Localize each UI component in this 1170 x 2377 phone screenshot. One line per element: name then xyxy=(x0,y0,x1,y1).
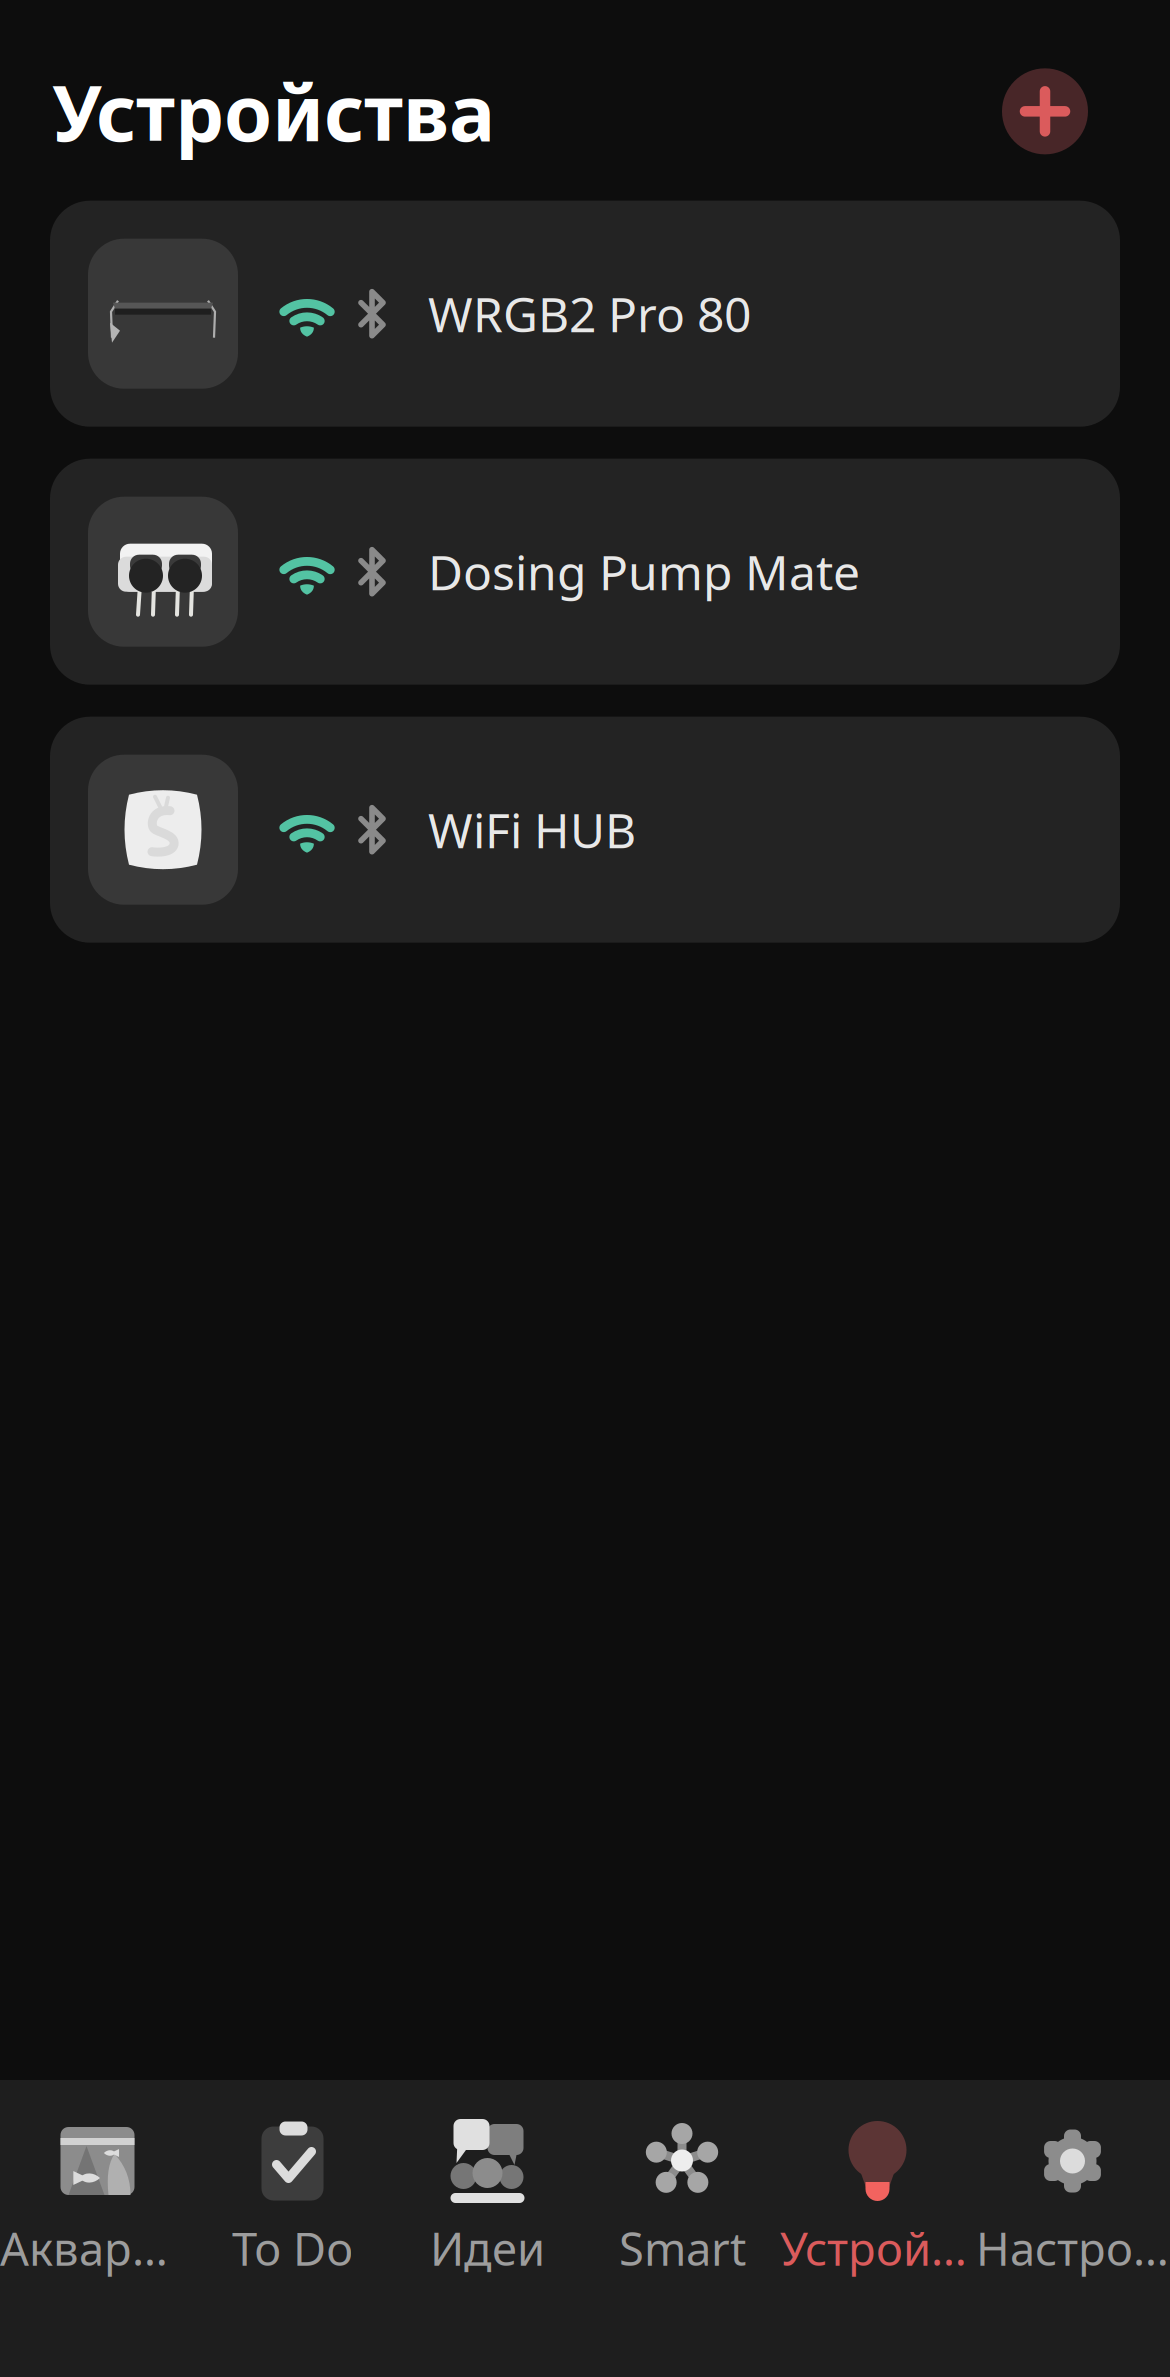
button[interactable]: Устройс… xyxy=(780,2080,975,2377)
button[interactable]: Настро… xyxy=(975,2080,1170,2377)
staticText: To Do xyxy=(232,2218,353,2278)
button[interactable]: WRGB2 Pro 80 xyxy=(50,201,1120,427)
button[interactable]: WiFi HUB xyxy=(50,717,1120,943)
button[interactable]: Smart xyxy=(585,2080,780,2377)
staticText: Устройства xyxy=(52,60,495,163)
button[interactable]: Аквари… xyxy=(0,2080,195,2377)
button[interactable]: To Do xyxy=(195,2080,390,2377)
button[interactable]: Dosing Pump Mate xyxy=(50,459,1120,685)
staticText: Smart xyxy=(619,2218,746,2278)
staticText: Настро… xyxy=(976,2218,1169,2278)
staticText: Устройс… xyxy=(780,2218,975,2278)
staticText: Dosing Pump Mate xyxy=(428,540,860,603)
staticText: Аквари… xyxy=(0,2218,195,2278)
staticText: WRGB2 Pro 80 xyxy=(428,282,751,345)
staticText: WiFi HUB xyxy=(428,798,636,861)
button[interactable]: Идеи xyxy=(390,2080,585,2377)
staticText: Идеи xyxy=(430,2218,545,2278)
button[interactable]: Add device xyxy=(1002,68,1088,154)
